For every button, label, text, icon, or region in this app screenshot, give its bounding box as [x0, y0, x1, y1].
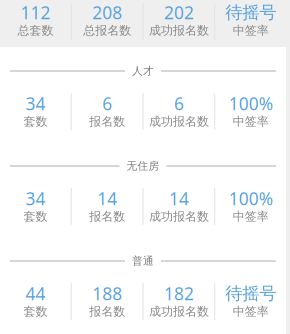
staticText: 总套数: [17, 23, 53, 38]
staticText: 套数: [23, 209, 47, 224]
staticText: 无住房: [126, 159, 159, 172]
staticText: 套数: [23, 304, 47, 319]
staticText: 中签率: [233, 209, 269, 224]
staticText: 112: [20, 1, 50, 24]
staticText: 34: [25, 92, 45, 115]
staticText: 总报名数: [83, 23, 131, 38]
staticText: 人才: [132, 64, 154, 77]
staticText: 44: [25, 282, 45, 305]
button[interactable]: 112: [0, 0, 290, 47]
staticText: 待摇号: [225, 283, 276, 304]
button[interactable]: 普通: [0, 237, 286, 332]
staticText: 100%: [229, 92, 273, 115]
staticText: 套数: [23, 114, 47, 129]
staticText: 182: [164, 282, 194, 305]
staticText: 6: [174, 92, 184, 115]
staticText: 报名数: [89, 114, 125, 129]
staticText: 100%: [229, 187, 273, 210]
staticText: 成功报名数: [149, 304, 209, 319]
staticText: 报名数: [89, 304, 125, 319]
staticText: 成功报名数: [149, 114, 209, 129]
staticText: 14: [169, 187, 189, 210]
staticText: 202: [164, 1, 194, 24]
staticText: 成功报名数: [149, 209, 209, 224]
button[interactable]: 无住房: [0, 142, 286, 237]
staticText: 188: [92, 282, 122, 305]
staticText: 报名数: [89, 209, 125, 224]
staticText: 成功报名数: [149, 23, 209, 38]
staticText: 14: [97, 187, 117, 210]
staticText: 208: [92, 1, 122, 24]
button[interactable]: 人才: [0, 47, 286, 142]
staticText: 6: [102, 92, 112, 115]
staticText: 34: [25, 187, 45, 210]
staticText: 中签率: [233, 23, 269, 38]
staticText: 中签率: [233, 114, 269, 129]
staticText: 普通: [132, 254, 154, 267]
staticText: 待摇号: [225, 2, 276, 23]
staticText: 中签率: [233, 304, 269, 319]
